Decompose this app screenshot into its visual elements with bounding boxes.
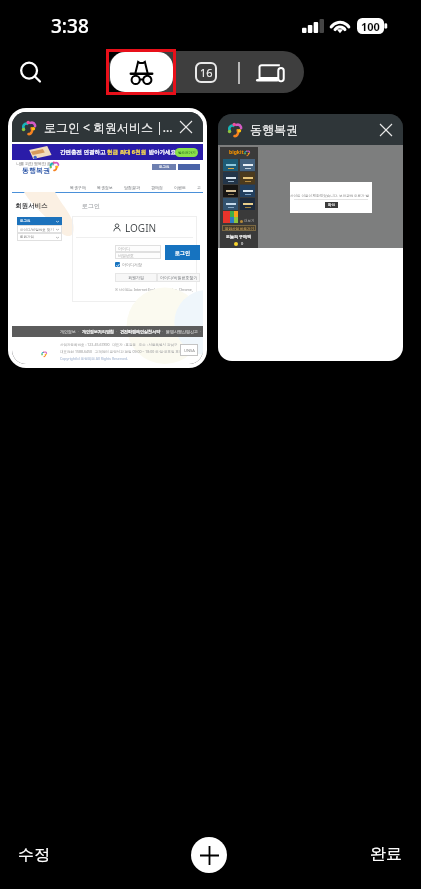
staticText: 고 <box>197 185 201 190</box>
staticText: 로그인 < 회원서비스 |... <box>44 119 172 135</box>
staticText: 로그인 <box>175 250 190 256</box>
staticText: 아이디/비밀번호찾기 <box>160 275 198 280</box>
staticText: UNSA <box>184 348 195 353</box>
button[interactable]: 완료 <box>356 834 416 874</box>
button[interactable]: Tabs, 16 open <box>191 57 221 87</box>
staticText: 동행복권 <box>250 122 372 137</box>
button[interactable]: 수정 <box>4 835 64 875</box>
staticText: 이벤트 <box>174 185 186 190</box>
staticText: 건전화캠페인실천서약 <box>120 329 160 334</box>
staticText: 나를 위한 행복한 꿈을 <box>16 161 56 166</box>
staticText: 개인정보 <box>60 329 76 334</box>
staticText: 비밀번호 <box>118 253 134 258</box>
staticText: 회원가입 <box>128 275 144 280</box>
button[interactable]: 동행복권 <box>218 114 403 361</box>
button[interactable]: Incognito tabs <box>110 52 173 92</box>
staticText: 로그인 <box>82 202 100 210</box>
staticText: 아이디/비밀번호 찾기 <box>20 227 54 232</box>
staticText: 개인정보처리방침 <box>82 329 114 334</box>
staticText: 100 <box>361 19 380 34</box>
staticText: · <box>160 329 166 334</box>
staticText: 사이트 이용이 제한되었습니다. 보안관련 오류가 발생했습니다 <box>290 193 372 198</box>
staticText: · <box>198 329 203 334</box>
staticText: 받아가세요 <box>147 148 176 156</box>
staticText: 복권정보 <box>97 185 113 190</box>
staticText: 대표전화 1588-6450 고객센터 운영시간 평일 09:00 ~ 18:0… <box>60 349 183 354</box>
staticText: ※ 사이트는 Internet Explorer 11, Edge, Chrom… <box>115 287 200 292</box>
staticText: 당첨결과 <box>124 185 140 190</box>
button[interactable]: Search <box>9 51 53 95</box>
staticText: 3:38 <box>51 13 89 39</box>
staticText: 로그인 <box>20 219 31 223</box>
staticText: · <box>76 329 82 334</box>
staticText: 오늘의 구매액 <box>226 234 252 239</box>
staticText: · <box>114 329 120 334</box>
staticText: 복권구매 <box>70 185 86 190</box>
staticText: 회원가입 <box>20 235 34 239</box>
staticText: bigkit <box>229 149 244 156</box>
button[interactable]: 로그인 < 회원서비스 |... <box>12 112 203 364</box>
staticText: 복권사업 바로가기 <box>225 226 254 231</box>
staticText: 수정 <box>18 845 50 865</box>
button[interactable]: Synced devices <box>253 57 289 87</box>
staticText: 0 <box>241 241 244 246</box>
staticText: 확인 <box>328 203 335 207</box>
button[interactable]: Close tab <box>376 120 396 140</box>
staticText: 완료 <box>370 844 402 864</box>
staticText: 아이디 <box>118 246 130 251</box>
staticText: 동행복권 <box>22 166 50 175</box>
staticText: 판매점 <box>151 185 163 190</box>
staticText: LOGIN <box>125 221 157 235</box>
staticText: 더보기 <box>244 219 255 223</box>
staticText: 16 <box>200 65 213 80</box>
staticText: 사업자등록번호 : 123-45-67890 대표자 : 홍길동 주소 : 서울… <box>60 342 178 347</box>
staticText: Copyright(c) 동행복권 All Rights Reserved. <box>60 356 129 361</box>
button[interactable]: New incognito tab <box>191 837 227 873</box>
staticText: 로그인 <box>159 165 170 169</box>
staticText: 불법사행산업신고 <box>166 329 198 334</box>
button[interactable]: Close tab <box>176 117 196 137</box>
staticText: 회원서비스 <box>15 202 48 210</box>
staticText: 현금 최대 6천원 <box>107 148 147 156</box>
staticText: 간편충전 연결하고 <box>60 148 107 156</box>
staticText: 받으러가기 <box>178 151 196 155</box>
staticText: 아이디저장 <box>122 262 142 267</box>
